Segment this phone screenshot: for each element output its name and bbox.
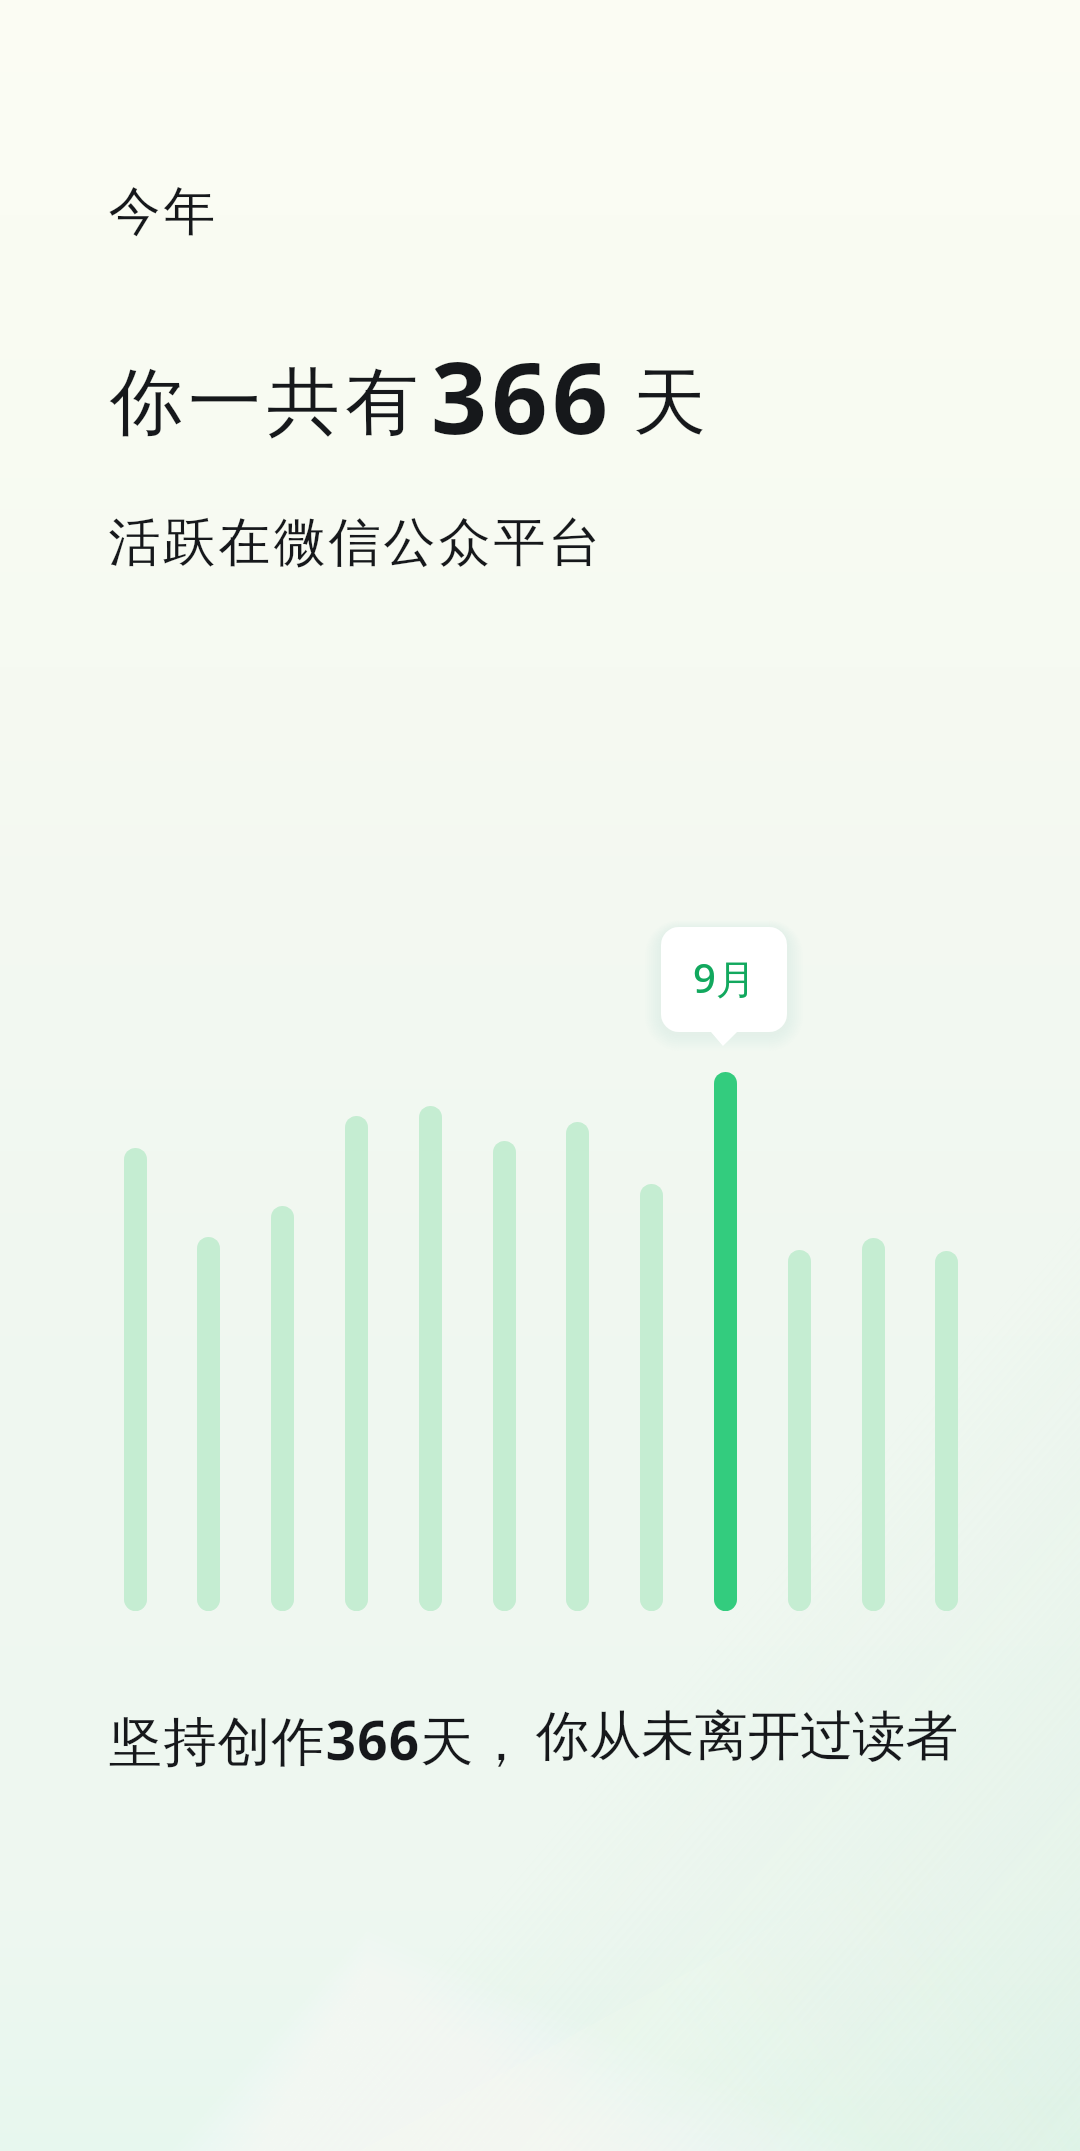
button[interactable]: 8月: [640, 1184, 663, 1611]
button[interactable]: 1月: [124, 1148, 147, 1611]
button[interactable]: 12月: [935, 1251, 958, 1611]
staticText: 今年: [107, 179, 217, 245]
button[interactable]: 11月: [862, 1238, 885, 1611]
staticText: 活跃在微信公众平台: [107, 510, 602, 576]
button[interactable]: 4月: [345, 1116, 368, 1611]
staticText: 9月: [693, 950, 756, 1005]
button[interactable]: 5月: [419, 1106, 442, 1611]
staticText: 366: [431, 329, 613, 462]
staticText: 你一共有: [107, 357, 421, 449]
button[interactable]: 2月: [197, 1237, 220, 1611]
button[interactable]: 10月: [788, 1250, 811, 1611]
button[interactable]: 7月: [566, 1122, 589, 1611]
button[interactable]: 6月: [493, 1141, 516, 1611]
staticText: 坚持创作366天，: [109, 1703, 529, 1775]
button[interactable]: September, 9月: [661, 927, 787, 1032]
button[interactable]: 9月: [714, 1072, 737, 1611]
staticText: 天: [633, 357, 706, 449]
staticText: 你从未离开过读者: [536, 1703, 959, 1770]
button[interactable]: 3月: [271, 1206, 294, 1611]
